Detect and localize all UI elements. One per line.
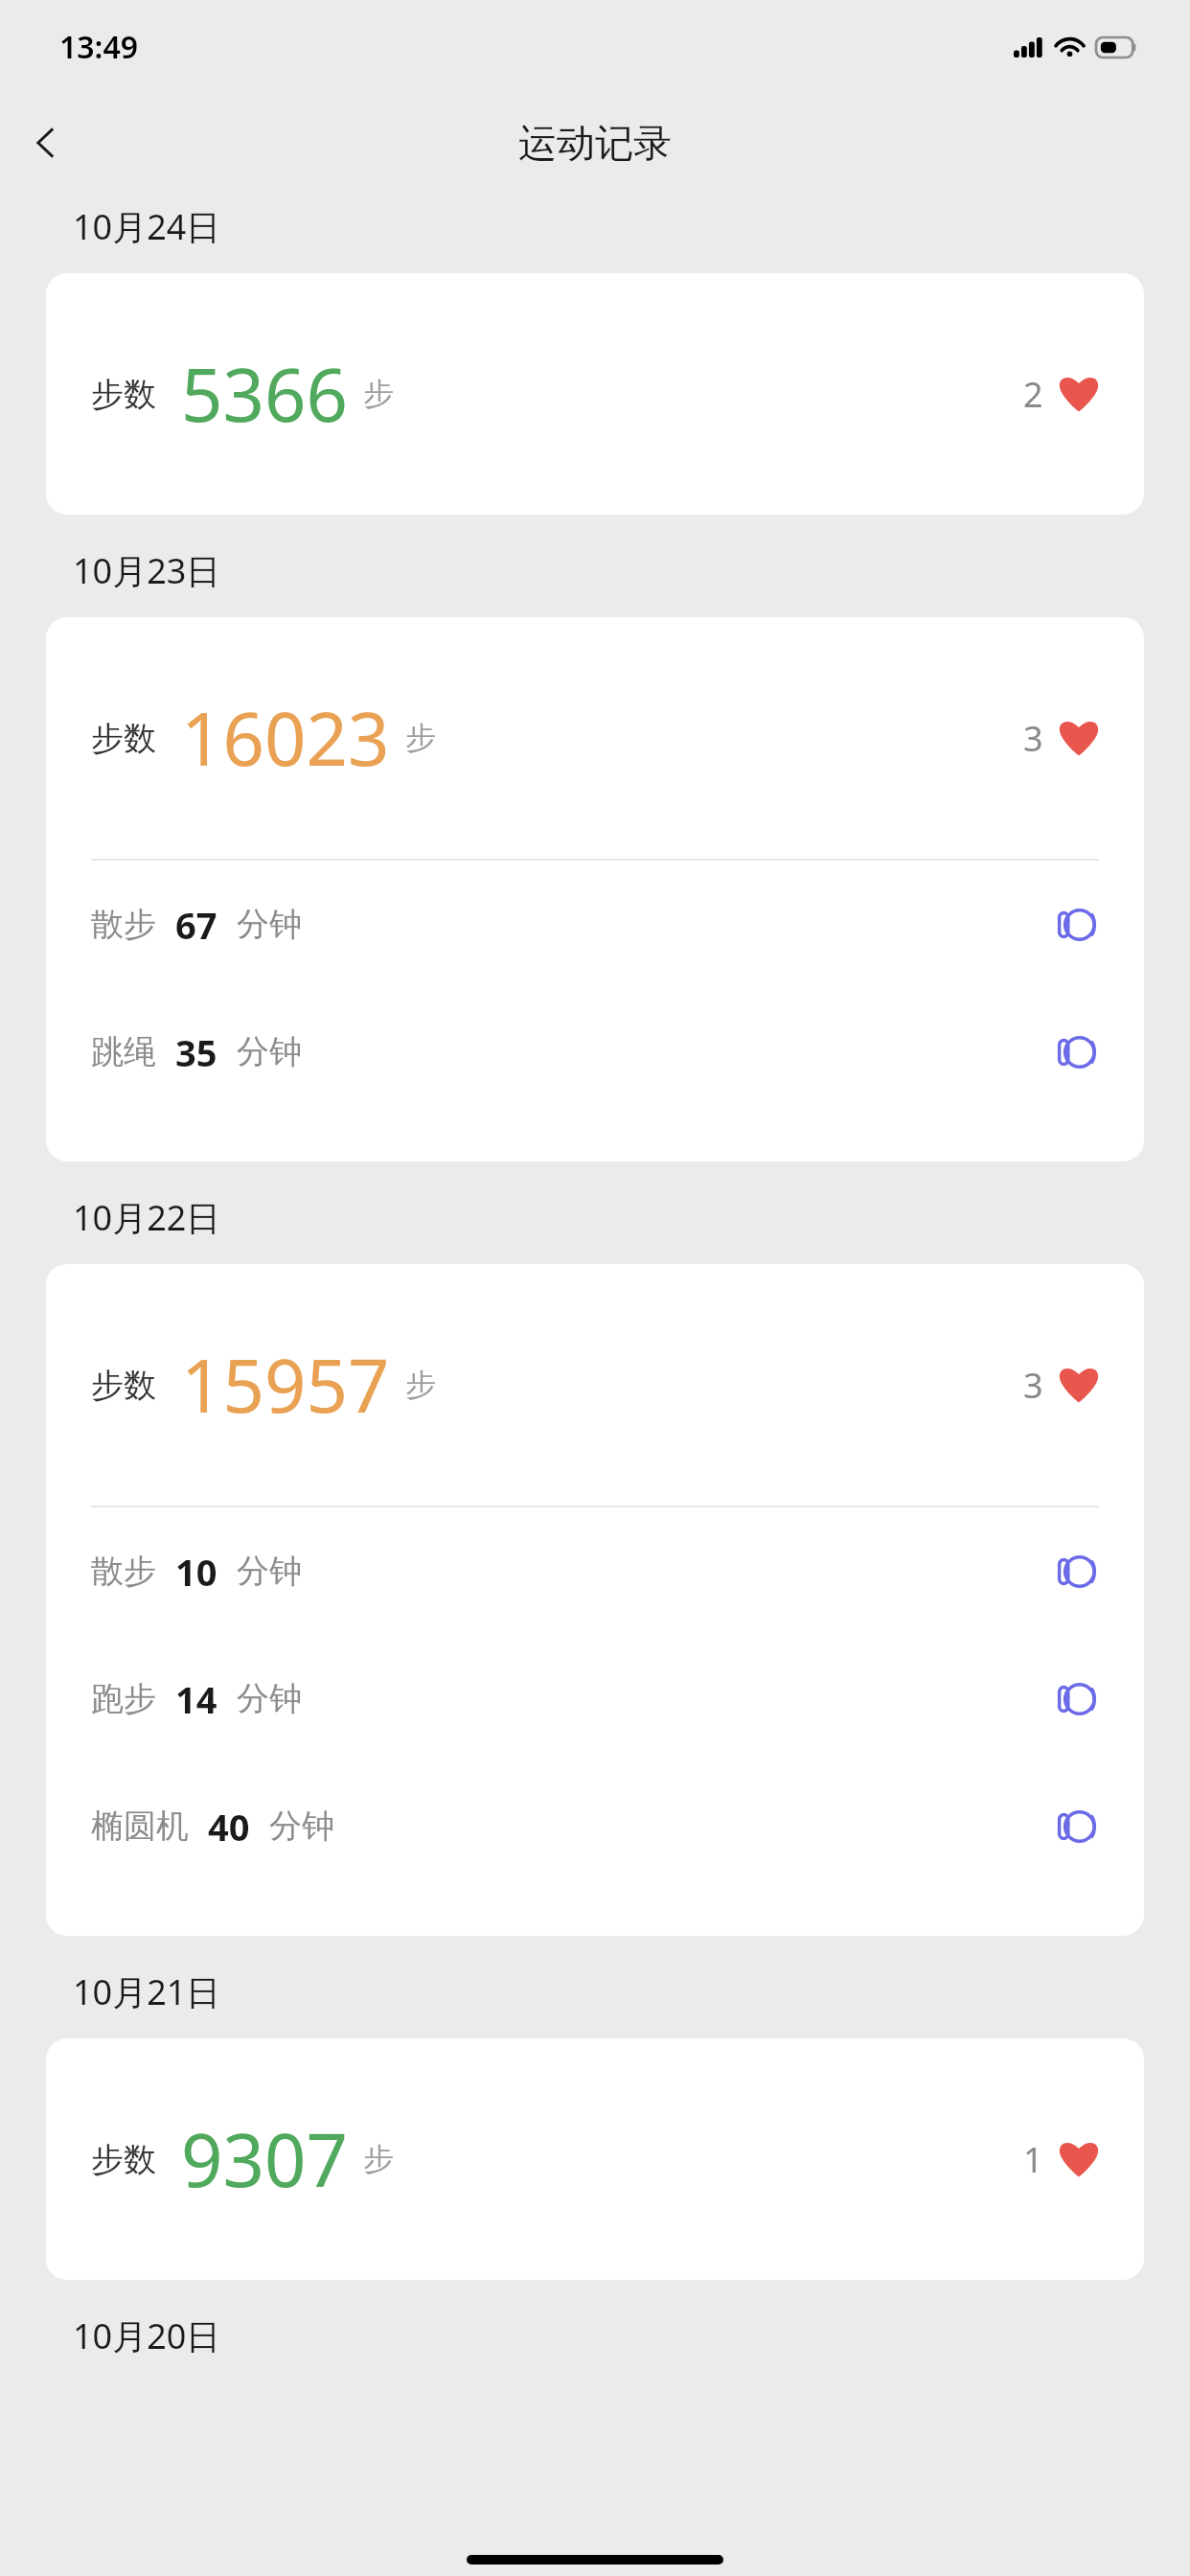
staticText: 步 xyxy=(405,719,436,757)
staticText: 40 xyxy=(208,1802,250,1851)
button[interactable]: 步数 xyxy=(46,2038,1144,2280)
staticText: 跳绳 xyxy=(91,1031,156,1072)
staticText: 椭圆机 xyxy=(91,1805,189,1847)
staticText: 10月22日 xyxy=(73,1194,221,1241)
staticText: 14 xyxy=(175,1674,217,1724)
staticText: 3 xyxy=(1023,715,1043,762)
staticText: 9307 xyxy=(181,2109,348,2209)
staticText: 13:49 xyxy=(59,26,139,68)
staticText: 步 xyxy=(405,1366,436,1404)
staticText: 10月23日 xyxy=(73,547,221,594)
staticText: 10月20日 xyxy=(73,2312,221,2359)
button[interactable]: Back xyxy=(0,97,92,189)
staticText: 1 xyxy=(1023,2136,1043,2183)
button[interactable]: 跑步 xyxy=(46,1635,1144,1762)
staticText: 分钟 xyxy=(237,904,302,945)
staticText: 分钟 xyxy=(269,1805,334,1847)
button[interactable]: 步数 xyxy=(46,273,1144,515)
staticText: 5366 xyxy=(181,344,348,444)
staticText: 散步 xyxy=(91,904,156,945)
button[interactable]: 椭圆机 xyxy=(46,1762,1144,1890)
staticText: 15957 xyxy=(181,1335,390,1435)
staticText: 步数 xyxy=(91,718,156,759)
staticText: 步数 xyxy=(91,374,156,415)
staticText: 35 xyxy=(175,1027,217,1077)
button[interactable]: 跳绳 xyxy=(46,988,1144,1115)
staticText: 3 xyxy=(1023,1362,1043,1409)
staticText: 10月24日 xyxy=(73,203,221,250)
button[interactable]: 步数 xyxy=(46,617,1144,1161)
staticText: 散步 xyxy=(91,1551,156,1592)
staticText: 跑步 xyxy=(91,1678,156,1719)
staticText: 10月21日 xyxy=(73,1968,221,2015)
staticText: 步数 xyxy=(91,2139,156,2180)
staticText: 67 xyxy=(175,900,217,950)
staticText: 16023 xyxy=(181,688,390,788)
button[interactable]: 散步 xyxy=(46,1507,1144,1635)
staticText: 分钟 xyxy=(237,1031,302,1072)
staticText: 步 xyxy=(363,375,394,413)
button[interactable]: 散步 xyxy=(46,861,1144,988)
staticText: 分钟 xyxy=(237,1678,302,1719)
staticText: 步数 xyxy=(91,1365,156,1406)
staticText: 10 xyxy=(175,1547,217,1597)
staticText: 步 xyxy=(363,2140,394,2178)
staticText: 2 xyxy=(1023,371,1043,418)
button[interactable]: 步数 xyxy=(46,1264,1144,1936)
staticText: 分钟 xyxy=(237,1551,302,1592)
staticText: 运动记录 xyxy=(518,119,672,167)
